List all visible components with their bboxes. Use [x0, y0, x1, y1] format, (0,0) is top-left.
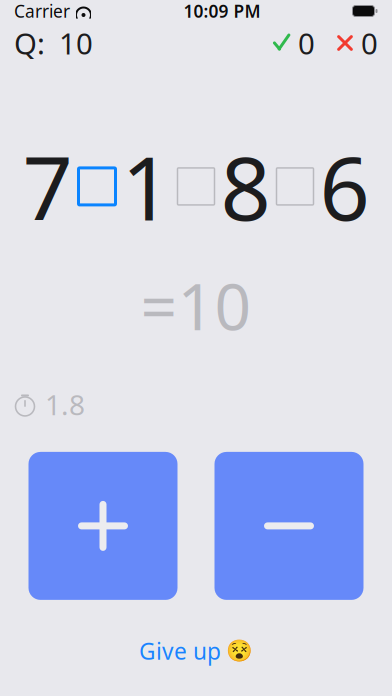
staticText: Q: — [14, 23, 45, 62]
staticText: Give up — [139, 636, 221, 666]
staticText: 6 — [319, 128, 369, 245]
staticText: 0 — [361, 23, 378, 62]
button[interactable]: Minus — [214, 452, 363, 600]
staticText: Carrier — [14, 0, 70, 22]
staticText: 1 — [121, 128, 171, 245]
button[interactable]: Plus — [28, 452, 177, 600]
staticText: 😵 — [226, 639, 253, 663]
staticText: 10 — [59, 23, 93, 62]
staticText: 1.8 — [45, 386, 85, 423]
staticText: 10:09 PM — [183, 0, 260, 22]
staticText: =10 — [140, 263, 251, 348]
staticText: 7 — [22, 128, 72, 245]
button[interactable]: Give up — [129, 632, 263, 670]
staticText: 8 — [220, 128, 270, 245]
staticText: 0 — [298, 23, 315, 62]
